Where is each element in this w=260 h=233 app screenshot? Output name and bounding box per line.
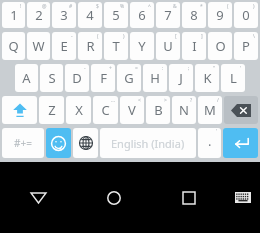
staticText: 2 <box>35 6 43 24</box>
button[interactable]: Switch keyboard <box>226 162 260 233</box>
button[interactable]: F <box>91 64 115 92</box>
button[interactable]: A <box>15 64 38 92</box>
staticText: " <box>213 65 216 72</box>
button[interactable]: R <box>78 32 102 60</box>
button[interactable]: T <box>104 32 128 60</box>
staticText: 3 <box>60 6 68 24</box>
staticText: ] <box>201 33 203 40</box>
button[interactable]: Hide keyboard <box>0 162 76 233</box>
button[interactable]: 5 <box>104 2 128 28</box>
button[interactable]: I <box>182 32 206 60</box>
staticText: O <box>215 37 226 55</box>
staticText: Y <box>138 37 146 55</box>
staticText: ? <box>190 97 193 104</box>
staticText: 5 <box>112 6 120 24</box>
button[interactable]: K <box>195 64 219 92</box>
button[interactable]: Symbols <box>2 128 44 158</box>
button[interactable]: M <box>198 96 222 124</box>
button[interactable]: G <box>117 64 141 92</box>
button[interactable]: Emoji <box>46 128 71 158</box>
button[interactable]: V <box>120 96 144 124</box>
staticText: 6 <box>138 6 146 24</box>
staticText: S <box>48 69 56 87</box>
staticText: 4 <box>86 6 94 24</box>
button[interactable]: Backspace <box>224 96 258 124</box>
button[interactable]: English (India) <box>100 128 196 158</box>
staticText: % <box>120 3 125 10</box>
staticText: E <box>60 37 68 55</box>
staticText: ; <box>188 65 190 72</box>
staticText: ^ <box>148 3 151 10</box>
staticText: \ <box>253 33 255 40</box>
staticText: … <box>111 97 115 104</box>
staticText: R <box>86 37 95 55</box>
staticText: $ <box>96 3 99 10</box>
button[interactable]: 9 <box>208 2 232 28</box>
staticText: ! <box>20 3 22 10</box>
staticText: ' <box>216 128 218 135</box>
staticText: English (India) <box>111 136 185 151</box>
button[interactable]: U <box>156 32 180 60</box>
staticText: . <box>208 132 212 150</box>
button[interactable]: Home <box>76 162 151 233</box>
button[interactable]: 3 <box>52 2 76 28</box>
button[interactable]: 8 <box>182 2 206 28</box>
button[interactable]: C <box>93 96 118 124</box>
button[interactable]: Recent apps <box>151 162 226 233</box>
button[interactable]: N <box>172 96 196 124</box>
staticText: X <box>75 101 83 119</box>
button[interactable]: L <box>221 64 245 92</box>
button[interactable]: P <box>234 32 258 60</box>
button[interactable]: Change language <box>73 128 98 158</box>
staticText: + <box>109 65 112 72</box>
button[interactable]: B <box>146 96 170 124</box>
staticText: @ <box>42 3 47 10</box>
button[interactable]: Y <box>130 32 154 60</box>
button[interactable]: H <box>143 64 167 92</box>
staticText: * <box>200 3 203 10</box>
button[interactable]: 4 <box>78 2 102 28</box>
button[interactable]: 2 <box>27 2 50 28</box>
staticText: # <box>69 3 73 10</box>
staticText: K <box>203 69 212 87</box>
staticText: U <box>163 37 173 55</box>
staticText: A <box>22 69 31 87</box>
staticText: I <box>192 37 197 55</box>
button[interactable]: O <box>208 32 232 60</box>
button[interactable]: S <box>40 64 63 92</box>
staticText: #+= <box>14 136 32 150</box>
button[interactable]: W <box>27 32 50 60</box>
staticText: L <box>230 69 237 87</box>
staticText: G <box>124 69 134 87</box>
staticText: [ <box>175 33 177 40</box>
staticText: M <box>204 101 216 119</box>
staticText: Q <box>8 37 19 55</box>
button[interactable]: Enter <box>223 128 258 158</box>
staticText: N <box>179 101 189 119</box>
staticText: 0 <box>242 6 250 24</box>
button[interactable]: Shift <box>2 96 37 124</box>
staticText: T <box>112 37 120 55</box>
staticText: Z <box>48 101 56 119</box>
staticText: 1 <box>10 6 18 24</box>
button[interactable]: D <box>65 64 89 92</box>
button[interactable]: 1 <box>2 2 25 28</box>
button[interactable]: X <box>66 96 91 124</box>
staticText: > <box>164 97 167 104</box>
staticText: D <box>72 69 82 87</box>
button[interactable]: . <box>198 128 221 158</box>
staticText: ' <box>240 65 242 72</box>
button[interactable]: 0 <box>234 2 258 28</box>
staticText: - <box>71 33 73 40</box>
staticText: & <box>173 3 177 10</box>
staticText: C <box>101 101 110 119</box>
button[interactable]: Q <box>2 32 25 60</box>
button[interactable]: Z <box>39 96 64 124</box>
staticText: P <box>242 37 250 55</box>
staticText: < <box>138 97 141 104</box>
button[interactable]: J <box>169 64 193 92</box>
staticText: ) <box>123 33 125 40</box>
button[interactable]: 6 <box>130 2 154 28</box>
button[interactable]: 7 <box>156 2 180 28</box>
button[interactable]: E <box>52 32 76 60</box>
